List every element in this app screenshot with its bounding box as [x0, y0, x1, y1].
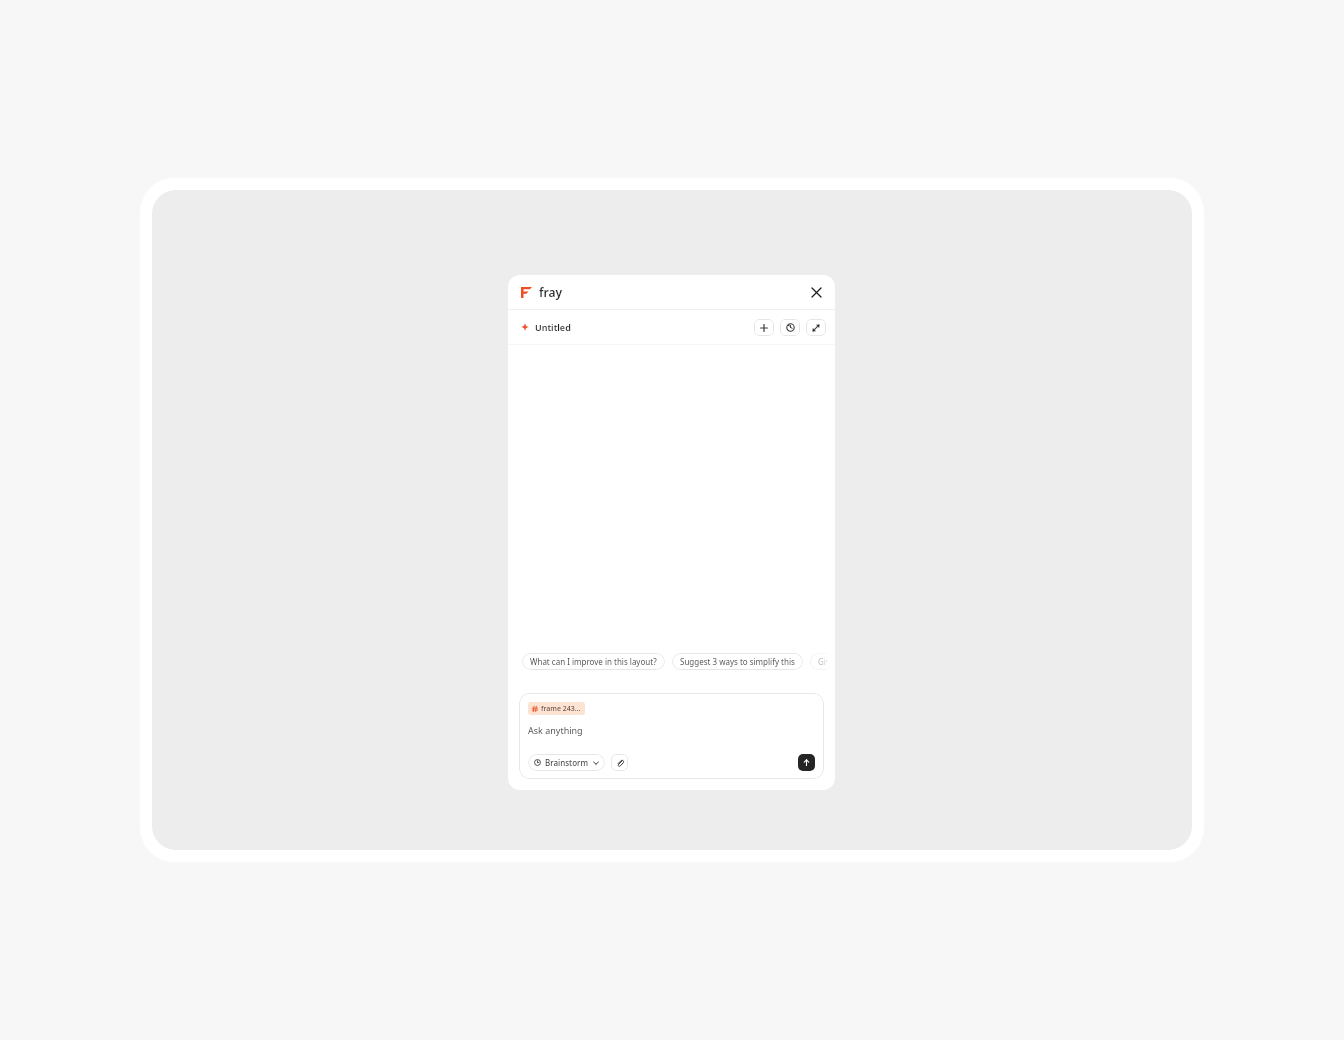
staticText: frame 243… [541, 704, 581, 714]
staticText: Untitled [535, 321, 571, 333]
staticText: What can I improve in this layout? [530, 656, 657, 667]
button[interactable]: frame 243… [519, 693, 824, 779]
button[interactable]: New [754, 319, 774, 336]
button[interactable]: History [780, 319, 800, 336]
button[interactable]: Attach file [611, 754, 628, 771]
button[interactable]: Send [798, 754, 815, 771]
button[interactable]: Expand [806, 319, 826, 336]
staticText: Suggest 3 ways to simplify this [680, 656, 795, 667]
staticText: Ask anything [528, 724, 583, 736]
staticText: Give feedback on this design [818, 656, 827, 667]
staticText: fray [539, 284, 563, 300]
button[interactable]: Give feedback on this design [810, 653, 835, 670]
button[interactable]: Untitled [521, 321, 571, 333]
button[interactable]: Close [806, 282, 826, 302]
button[interactable]: What can I improve in this layout? [522, 653, 665, 670]
button[interactable]: Suggest 3 ways to simplify this [672, 653, 803, 670]
button[interactable]: Brainstorm [528, 754, 605, 771]
staticText: Brainstorm [545, 757, 589, 768]
button[interactable]: frame 243… [528, 702, 585, 715]
